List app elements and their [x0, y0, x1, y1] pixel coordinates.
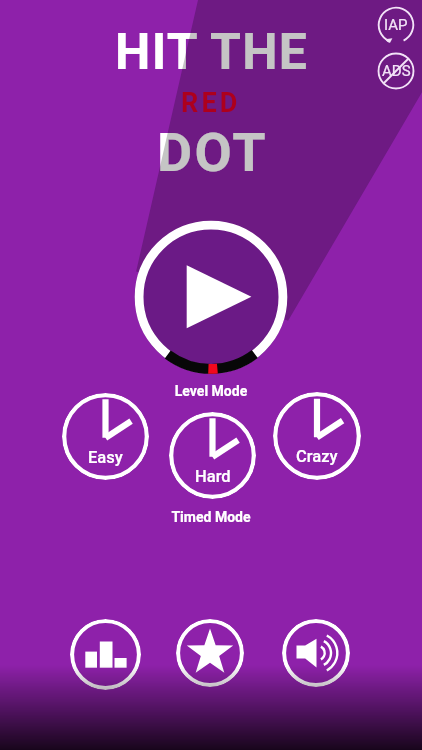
staticText: DOT	[157, 121, 269, 184]
button[interactable]: Crazy	[273, 392, 361, 480]
button[interactable]: Easy	[62, 393, 149, 480]
staticText: Easy	[88, 448, 123, 467]
staticText: Timed Mode	[0, 509, 422, 750]
staticText: ADS	[382, 62, 411, 80]
button[interactable]: Leaderboard	[70, 619, 141, 690]
button[interactable]: Rate this app	[176, 619, 244, 687]
button[interactable]: In-app purchases	[377, 6, 415, 44]
staticText: RED	[181, 87, 241, 119]
button[interactable]: Remove ads	[377, 52, 415, 90]
staticText: Hard	[195, 467, 231, 486]
button[interactable]: Hard	[169, 412, 256, 499]
staticText: Level Mode	[0, 383, 422, 750]
staticText: IAP	[384, 16, 408, 34]
button[interactable]: Sound	[282, 619, 350, 687]
button[interactable]: Play	[133, 219, 289, 375]
staticText: HIT THE	[115, 23, 309, 82]
staticText: Crazy	[296, 447, 338, 466]
